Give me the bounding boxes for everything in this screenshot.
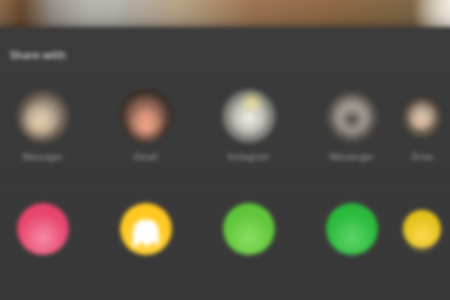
staticText: Messages — [0, 151, 90, 163]
button[interactable]: Gmail — [94, 89, 197, 163]
button[interactable]: Messenger — [300, 89, 403, 163]
staticText: Share with — [10, 47, 66, 62]
button[interactable]: Share to Snapchat — [94, 203, 197, 255]
button[interactable]: Share with — [10, 47, 66, 62]
staticText: Instagram — [201, 151, 296, 163]
button[interactable]: Drive — [403, 89, 441, 163]
button[interactable]: Share to Photos — [0, 203, 94, 255]
button[interactable]: Share to Line — [197, 203, 300, 255]
button[interactable]: Share to WhatsApp — [300, 203, 403, 255]
button[interactable]: Share to Kakao — [403, 203, 441, 255]
staticText: Gmail — [98, 151, 193, 163]
button[interactable]: Messages — [0, 89, 94, 163]
staticText: Drive — [403, 151, 441, 163]
staticText: Messenger — [304, 151, 399, 163]
button[interactable]: Instagram — [197, 89, 300, 163]
